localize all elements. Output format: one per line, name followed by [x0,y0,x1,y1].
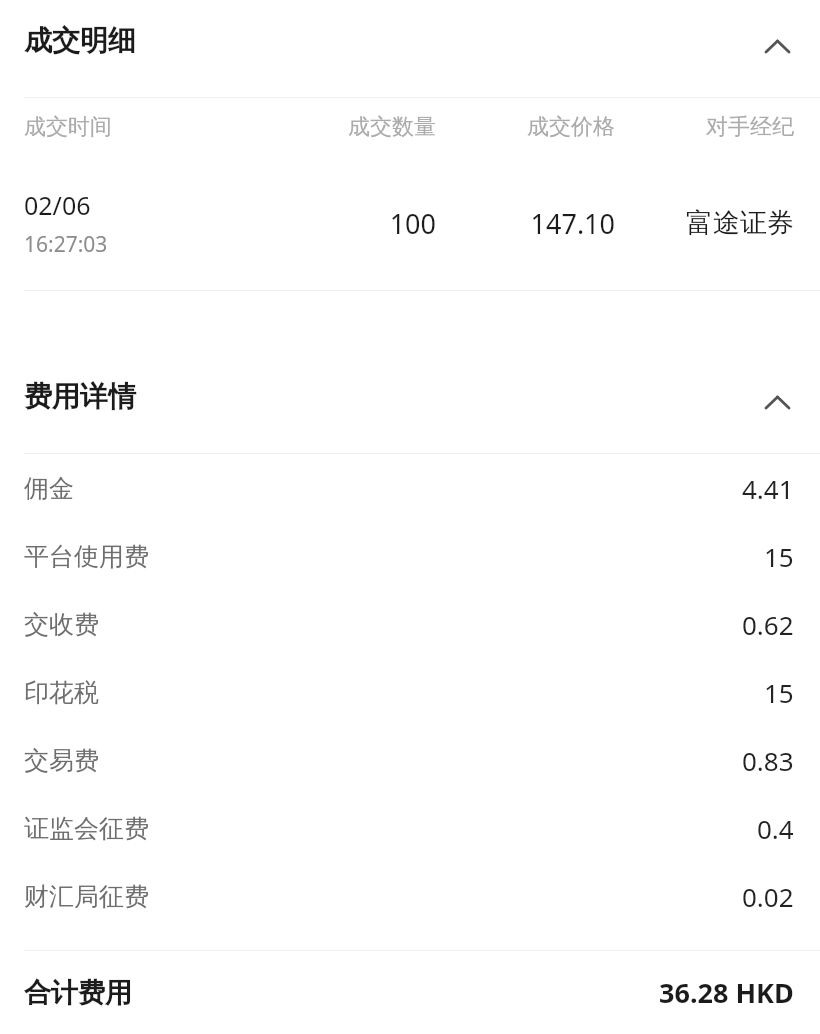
button[interactable]: Collapse 成交明细 [760,35,794,57]
staticText: 印花税 [24,677,99,708]
staticText: 4.41 [742,471,794,506]
staticText: 证监会征费 [24,813,149,844]
staticText: 交收费 [24,609,99,640]
staticText: 0.02 [742,879,794,914]
button[interactable]: 费用详情 [0,291,820,453]
staticText: 15 [764,539,794,574]
staticText: 15 [764,675,794,710]
button[interactable]: 交收费 [0,590,820,658]
staticText: 成交明细 [24,23,136,58]
staticText: 100 [257,205,436,242]
staticText: 费用详情 [24,379,136,414]
staticText: 财汇局征费 [24,881,149,912]
button[interactable]: 证监会征费 [0,794,820,862]
button[interactable]: 印花税 [0,658,820,726]
staticText: 富途证券 [615,206,794,240]
button[interactable]: 交易费 [0,726,820,794]
staticText: 0.83 [742,743,794,778]
staticText: 成交价格 [436,113,615,141]
staticText: 对手经纪 [615,113,794,141]
button[interactable]: 02/06 [0,156,820,290]
staticText: 合计费用 [24,976,132,1010]
button[interactable]: 合计费用 [0,951,820,1034]
staticText: 交易费 [24,745,99,776]
button[interactable]: 成交明细 [0,0,820,97]
staticText: 平台使用费 [24,541,149,572]
button[interactable]: 平台使用费 [0,522,820,590]
staticText: 0.4 [757,811,794,846]
button[interactable]: Collapse 费用详情 [760,391,794,413]
staticText: 0.62 [742,607,794,642]
staticText: 02/06 [24,188,91,222]
button[interactable]: 财汇局征费 [0,862,820,930]
staticText: 147.10 [436,205,615,242]
staticText: 成交时间 [24,113,257,141]
staticText: 16:27:03 [24,230,108,259]
button[interactable]: 佣金 [0,454,820,522]
staticText: 成交数量 [257,113,436,141]
staticText: 36.28 HKD [659,974,794,1011]
staticText: 佣金 [24,473,74,504]
